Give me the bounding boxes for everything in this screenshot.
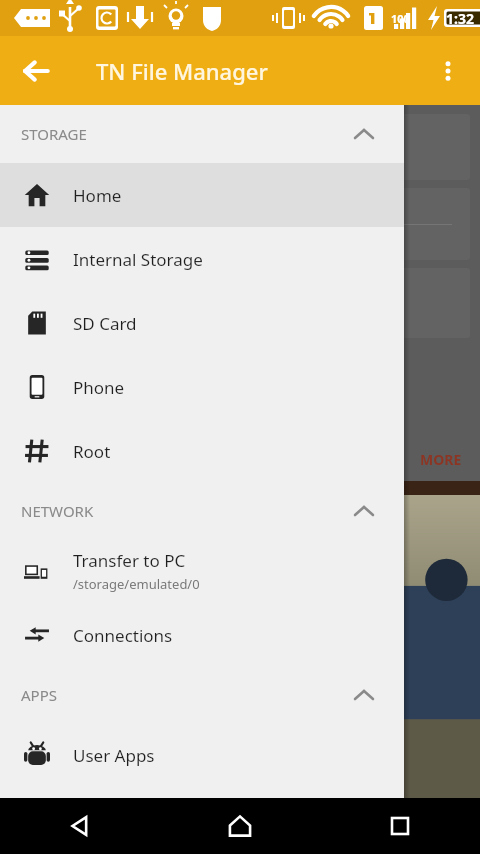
staticText: 100	[391, 11, 410, 26]
staticText: /storage/emulated/0	[73, 575, 200, 593]
button[interactable]: Phone	[0, 355, 404, 419]
button[interactable]: STORAGE	[0, 105, 404, 163]
button[interactable]: User Apps	[0, 723, 404, 787]
button[interactable]: Back	[12, 47, 60, 95]
staticText: Connections	[73, 624, 173, 647]
staticText: 1:32	[446, 9, 474, 28]
button[interactable]: Back	[0, 798, 160, 854]
staticText: Phone	[73, 376, 125, 399]
button[interactable]: Transfer to PC	[0, 539, 404, 603]
button[interactable]	[14, 268, 470, 338]
button[interactable]: APPS	[0, 667, 404, 723]
staticText: Transfer to PC	[73, 549, 186, 572]
button[interactable]: Root	[0, 419, 404, 483]
staticText: STORAGE	[21, 124, 87, 144]
button[interactable]: Home	[160, 798, 320, 854]
button[interactable]: More options	[424, 47, 472, 95]
staticText: MORE	[420, 450, 462, 469]
button[interactable]: Internal Storage	[0, 227, 404, 291]
staticText: Root	[73, 440, 111, 463]
staticText: Home	[73, 184, 122, 207]
button[interactable]: NETWORK	[0, 483, 404, 539]
button[interactable]: Home	[0, 163, 404, 227]
button[interactable]	[14, 114, 470, 180]
staticText: User Apps	[73, 744, 155, 767]
staticText: SD Card	[73, 312, 137, 335]
button[interactable]: Recents	[320, 798, 480, 854]
staticText: NETWORK	[21, 501, 94, 521]
button[interactable]: SD Card	[0, 291, 404, 355]
staticText: Internal Storage	[73, 248, 203, 271]
staticText: APPS	[21, 685, 57, 705]
button[interactable]	[14, 188, 470, 260]
button[interactable]: Connections	[0, 603, 404, 667]
staticText: TN File Manager	[96, 56, 268, 86]
